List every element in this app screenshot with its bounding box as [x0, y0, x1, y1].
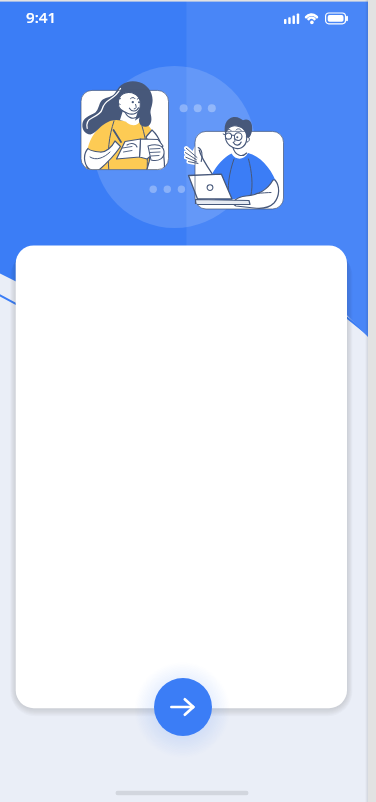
button[interactable]: Next — [154, 678, 212, 736]
staticText: 9:41 — [26, 7, 57, 28]
